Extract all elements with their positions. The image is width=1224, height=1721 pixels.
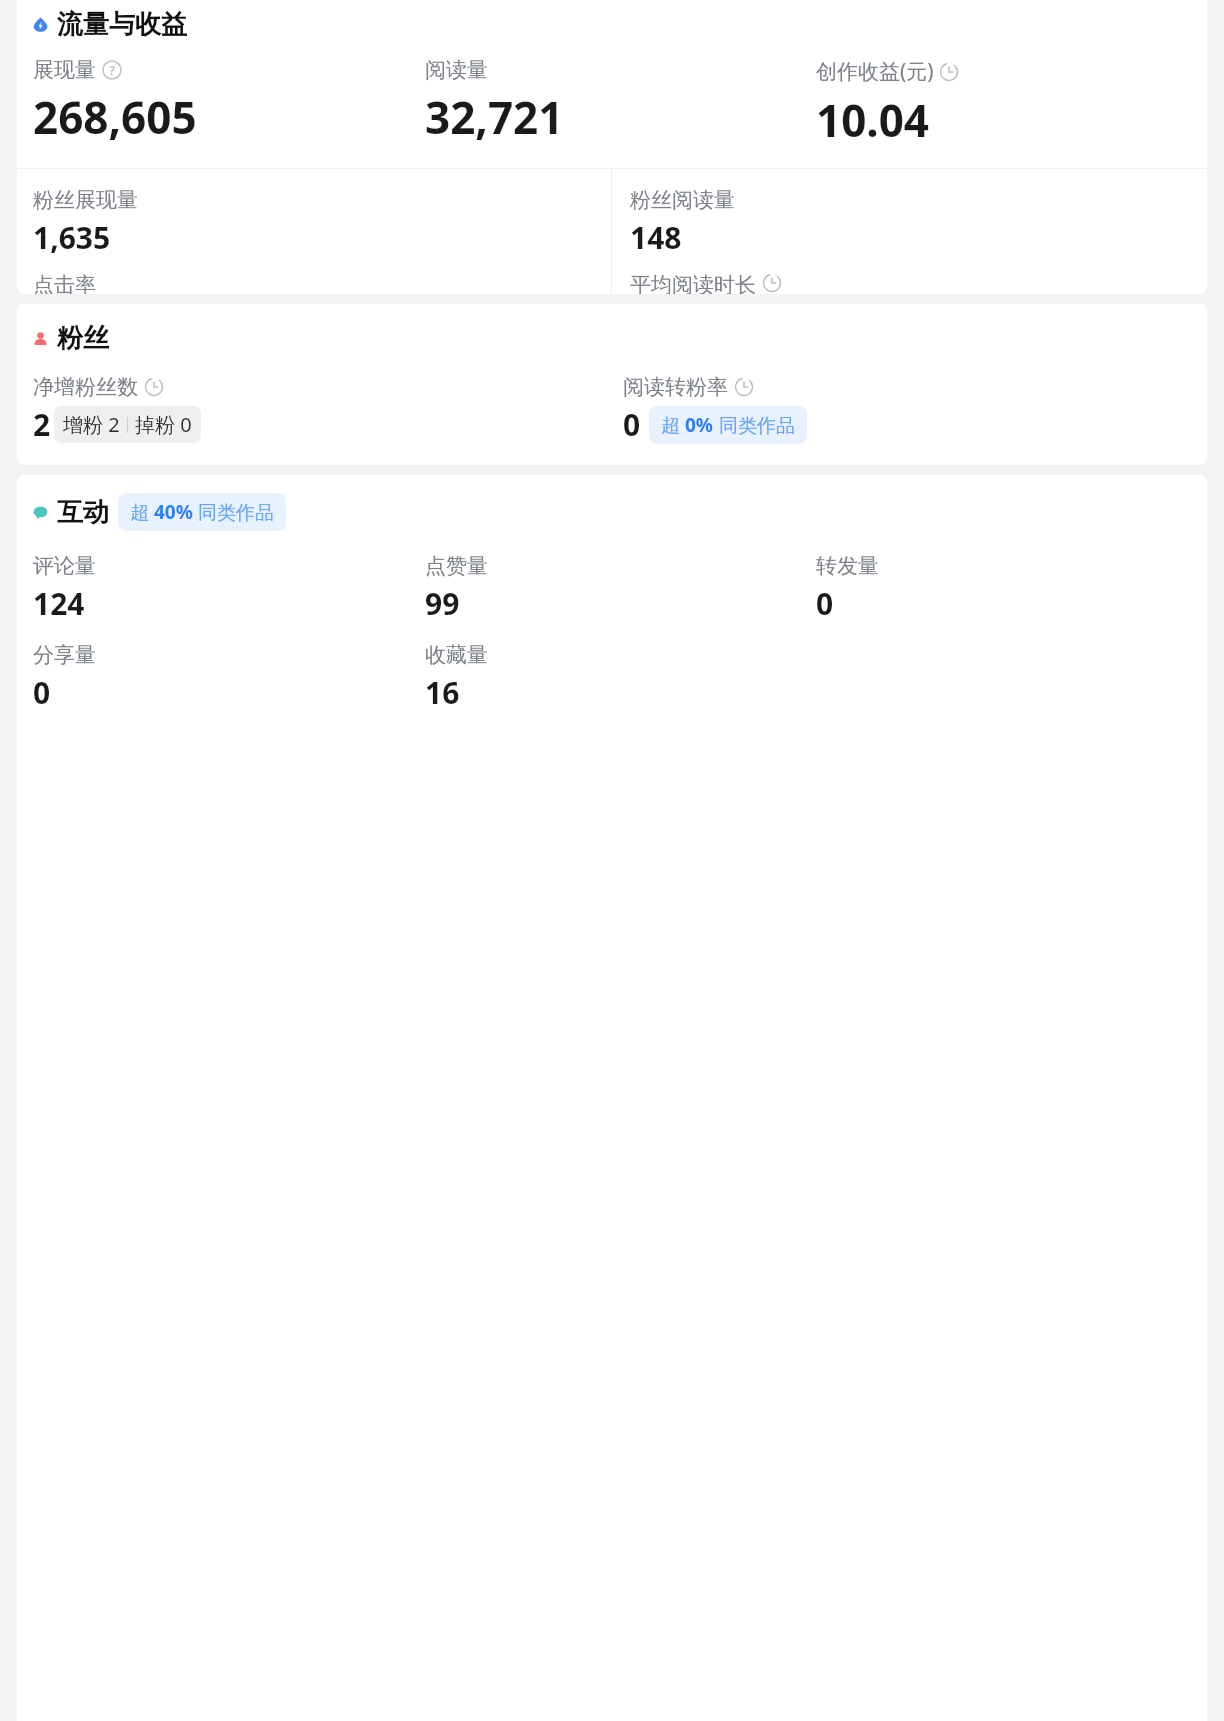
staticText: 平均阅读时长	[630, 272, 756, 294]
staticText: 0	[33, 672, 51, 713]
button[interactable]: 更新时间	[734, 377, 754, 397]
button[interactable]: 增粉 2	[54, 406, 201, 443]
staticText: 40%	[154, 499, 193, 525]
staticText: 点赞量	[425, 553, 488, 579]
button[interactable]: 收藏量	[425, 642, 816, 713]
staticText: 净增粉丝数	[33, 374, 138, 400]
staticText: 阅读量	[425, 57, 488, 83]
button[interactable]: 更新时间	[144, 377, 164, 397]
staticText: 粉丝	[57, 322, 109, 355]
button[interactable]: 点赞量	[425, 553, 816, 624]
staticText: 268,605	[33, 87, 197, 147]
button[interactable]: 超	[118, 493, 286, 531]
staticText: 0	[816, 583, 834, 624]
staticText: 创作收益(元)	[816, 57, 934, 86]
staticText: 16	[425, 672, 460, 713]
staticText: 评论量	[33, 553, 96, 579]
staticText: 掉粉 0	[135, 411, 192, 438]
staticText: 流量与收益	[57, 8, 187, 41]
other: 流量与收益	[33, 17, 48, 32]
button[interactable]: 说明	[102, 60, 122, 80]
other: 粉丝	[33, 331, 48, 346]
staticText: 粉丝展现量	[33, 187, 138, 213]
staticText: 99	[425, 583, 460, 624]
staticText: 展现量	[33, 57, 96, 83]
staticText: 148	[630, 217, 682, 258]
staticText: 0	[623, 404, 641, 445]
button[interactable]: 粉丝	[17, 304, 1207, 465]
other: 互动	[33, 505, 48, 520]
staticText: 超	[130, 499, 154, 525]
staticText: 收藏量	[425, 642, 488, 668]
button[interactable]: 更新时间	[762, 273, 782, 293]
button[interactable]: 更新时间	[939, 62, 959, 82]
staticText: 增粉 2	[63, 411, 120, 438]
staticText: 粉丝阅读量	[630, 187, 735, 213]
button[interactable]: 分享量	[33, 642, 425, 713]
staticText: 互动	[57, 496, 109, 529]
staticText: 点击率	[33, 272, 96, 294]
staticText: 转发量	[816, 553, 879, 579]
staticText: 同类作品	[714, 412, 795, 438]
button[interactable]: 转发量	[816, 553, 1207, 624]
staticText: 阅读转粉率	[623, 374, 728, 400]
staticText: 1,635	[33, 217, 111, 258]
staticText: 0%	[685, 412, 714, 438]
staticText: ?	[109, 62, 115, 79]
button[interactable]: 评论量	[33, 553, 425, 624]
staticText: 同类作品	[193, 499, 274, 525]
staticText: 2	[33, 404, 51, 445]
staticText: 分享量	[33, 642, 96, 668]
staticText: 124	[33, 583, 85, 624]
staticText: 超	[661, 412, 685, 438]
button[interactable]: 互动	[17, 475, 1207, 1721]
staticText: 32,721	[425, 87, 564, 147]
button[interactable]: 超	[649, 406, 807, 444]
button[interactable]: 流量与收益	[17, 0, 1207, 294]
staticText: 10.04	[816, 90, 930, 150]
